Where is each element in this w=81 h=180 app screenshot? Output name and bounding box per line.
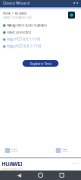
button[interactable]: http://127.0.0.1:1110 — [0, 36, 81, 43]
button[interactable]: https://127.0.0.1:1110 — [0, 43, 81, 50]
button[interactable]: Back — [17, 172, 21, 178]
button[interactable]: Management server reachable — [0, 22, 81, 29]
staticText: HUAWEI — [1, 160, 22, 168]
staticText: Product — [11, 149, 17, 150]
button[interactable]: Home — [38, 173, 43, 177]
staticText: Management server reachable — [7, 24, 47, 27]
button[interactable]: Recent apps — [60, 173, 64, 177]
staticText: Upgrade — [11, 151, 18, 152]
staticText: HUAWEI TECHNOLOGIES CO., LTD. — [1, 168, 22, 170]
button[interactable]: Device connected — [0, 29, 81, 36]
staticText: http://127.0.0.1:1110 — [7, 38, 40, 41]
staticText: Explore Test — [30, 61, 51, 66]
staticText: ◀ — [17, 172, 21, 178]
button[interactable]: Explore Test — [22, 60, 58, 67]
staticText: Device is ready to use — [3, 16, 32, 19]
button[interactable]: Remote — [56, 148, 68, 153]
staticText: https://127.0.0.1:1110 — [7, 45, 41, 48]
staticText: Device Wizard — [3, 0, 29, 6]
staticText: Ver 1.4.0 — [72, 162, 78, 164]
staticText: Remote — [62, 149, 67, 150]
staticText: Home > AI Device — [3, 12, 27, 15]
staticText: Device connected — [7, 31, 31, 34]
staticText: Support — [62, 151, 68, 152]
button[interactable]: Product — [5, 148, 18, 153]
